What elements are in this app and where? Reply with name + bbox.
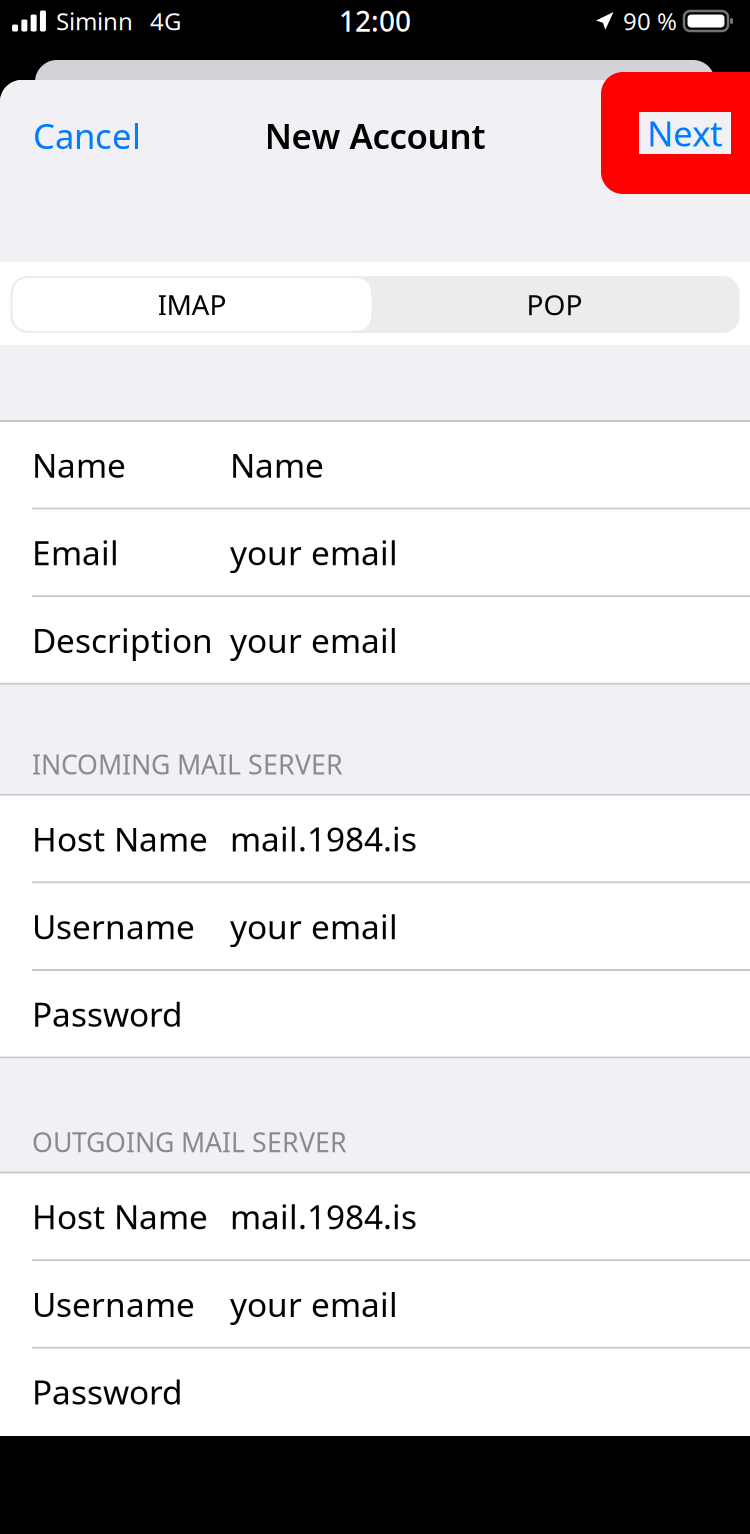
staticText: Password bbox=[32, 992, 183, 1036]
button[interactable]: Next bbox=[639, 112, 731, 154]
staticText: Description bbox=[32, 618, 213, 662]
staticText: Cancel bbox=[33, 112, 141, 158]
button[interactable]: Next bbox=[608, 80, 750, 191]
staticText: POP bbox=[526, 286, 582, 323]
button[interactable]: Email bbox=[0, 510, 750, 595]
staticText: mail.1984.is bbox=[230, 1194, 417, 1239]
staticText: OUTGOING MAIL SERVER bbox=[32, 1124, 347, 1160]
button[interactable]: Name bbox=[0, 422, 750, 508]
staticText: your email bbox=[230, 1282, 398, 1326]
staticText: Next bbox=[647, 110, 723, 156]
staticText: Host Name bbox=[32, 1194, 208, 1239]
staticText: 12:00 bbox=[339, 2, 411, 40]
staticText: New Account bbox=[264, 112, 485, 158]
staticText: mail.1984.is bbox=[230, 816, 417, 861]
button[interactable]: Username bbox=[0, 883, 750, 969]
button[interactable]: Password bbox=[0, 1349, 750, 1434]
staticText: Email bbox=[32, 530, 119, 575]
button[interactable]: Description bbox=[0, 597, 750, 683]
staticText: INCOMING MAIL SERVER bbox=[32, 746, 343, 782]
staticText: Name bbox=[230, 443, 324, 487]
button[interactable]: Password bbox=[0, 971, 750, 1057]
button[interactable]: Cancel bbox=[0, 80, 174, 191]
staticText: Siminn bbox=[56, 5, 133, 37]
button[interactable]: IMAP bbox=[12, 278, 371, 331]
staticText: Next bbox=[641, 112, 717, 158]
staticText: your email bbox=[230, 618, 398, 662]
staticText: Username bbox=[32, 904, 195, 948]
staticText: your email bbox=[230, 530, 398, 575]
button[interactable]: Host Name bbox=[0, 1174, 750, 1259]
staticText: Host Name bbox=[32, 816, 208, 861]
staticText: 4G bbox=[150, 5, 181, 37]
staticText: IMAP bbox=[157, 286, 226, 323]
button[interactable]: Username bbox=[0, 1261, 750, 1347]
button[interactable]: Host Name bbox=[0, 796, 750, 881]
button[interactable]: POP bbox=[371, 278, 737, 331]
staticText: 90 % bbox=[623, 5, 677, 37]
staticText: Name bbox=[32, 443, 126, 487]
staticText: Username bbox=[32, 1282, 195, 1326]
staticText: Password bbox=[32, 1369, 183, 1414]
staticText: your email bbox=[230, 904, 398, 948]
